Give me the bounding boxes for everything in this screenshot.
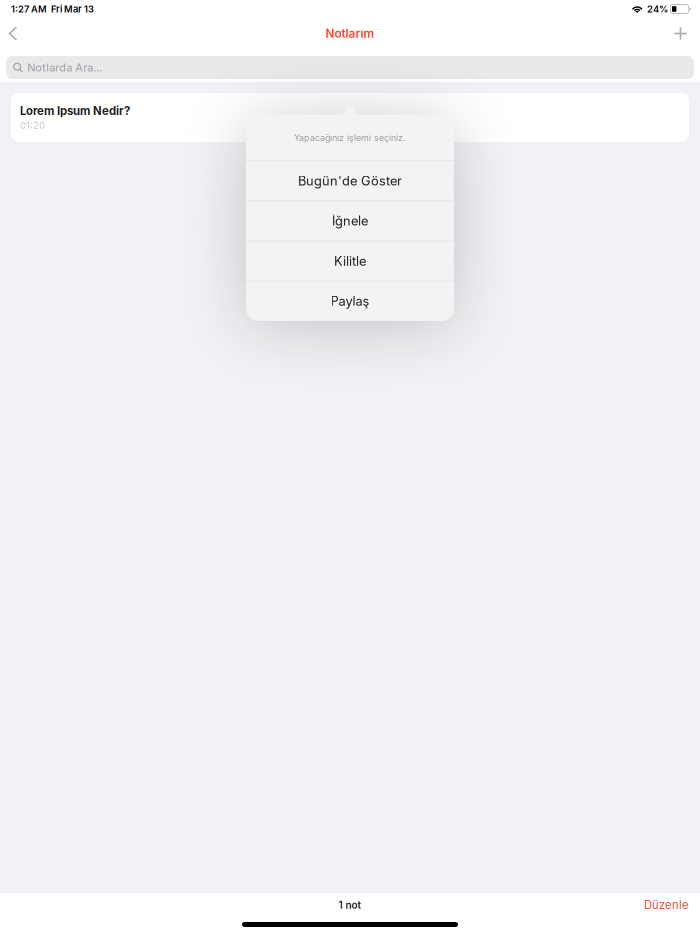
button[interactable]: New Note xyxy=(666,18,695,49)
staticText: Fri Mar 13 xyxy=(51,3,94,15)
button[interactable]: İğnele xyxy=(246,201,454,241)
staticText: 24% xyxy=(647,3,668,15)
button[interactable]: Düzenle xyxy=(633,893,700,917)
staticText: Bugün'de Göster xyxy=(298,173,402,189)
staticText: 01:20 xyxy=(20,120,45,131)
staticText: Notlarım xyxy=(325,26,374,41)
staticText: Kilitle xyxy=(334,253,366,269)
staticText: Yapacağınız işlemi seçiniz. xyxy=(294,132,406,143)
button[interactable]: Lorem Ipsum Nedir? xyxy=(11,93,689,142)
staticText: Lorem Ipsum Nedir? xyxy=(20,104,130,118)
button[interactable]: Paylaş xyxy=(246,281,454,321)
button[interactable]: Bugün'de Göster xyxy=(246,161,454,201)
staticText: 1 not xyxy=(338,899,361,911)
button[interactable]: Kilitle xyxy=(246,241,454,281)
button[interactable]: Notlarda Ara... xyxy=(6,56,694,79)
staticText: Paylaş xyxy=(330,293,369,309)
staticText: Düzenle xyxy=(644,898,689,912)
button[interactable]: Back xyxy=(0,18,26,49)
staticText: 1:27 AM xyxy=(11,3,47,15)
staticText: Notlarda Ara... xyxy=(27,61,102,74)
staticText: İğnele xyxy=(332,213,368,229)
